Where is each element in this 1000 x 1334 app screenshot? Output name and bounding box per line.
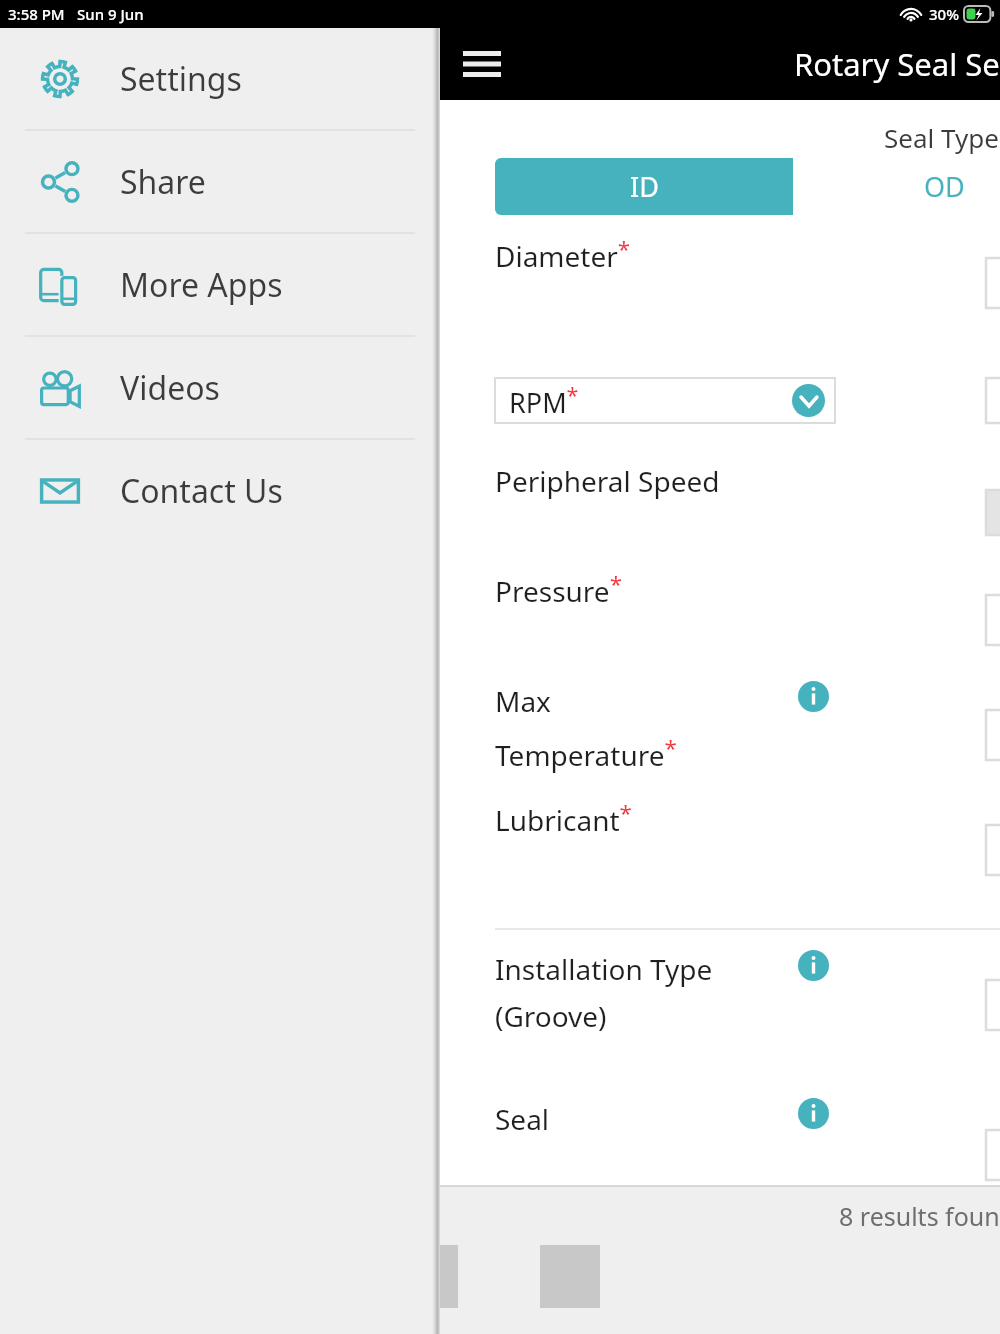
button[interactable] bbox=[986, 710, 1000, 760]
staticText: Rotary Seal Se bbox=[794, 43, 1000, 85]
button[interactable] bbox=[986, 980, 1000, 1030]
button[interactable]: More information bbox=[798, 1098, 829, 1129]
button[interactable]: More information bbox=[798, 950, 829, 981]
button[interactable]: More Apps bbox=[0, 234, 440, 335]
button[interactable]: Settings bbox=[0, 28, 440, 129]
staticText: Seal bbox=[495, 1100, 550, 1138]
button[interactable] bbox=[986, 258, 1000, 308]
staticText: 3:58 PM bbox=[8, 4, 65, 24]
button[interactable] bbox=[986, 1130, 1000, 1180]
staticText: Videos bbox=[120, 366, 220, 410]
button[interactable]: Open navigation menu bbox=[455, 37, 509, 91]
button[interactable] bbox=[986, 378, 1000, 423]
staticText: Max bbox=[495, 682, 551, 720]
button[interactable]: Videos bbox=[0, 337, 440, 438]
button[interactable]: Reset bbox=[152, 1245, 458, 1308]
button[interactable]: RPM* bbox=[495, 378, 835, 423]
button[interactable] bbox=[986, 595, 1000, 645]
staticText: Settings bbox=[120, 57, 242, 101]
button[interactable]: OD bbox=[793, 158, 1000, 215]
staticText: OD bbox=[924, 168, 965, 205]
staticText: (Groove) bbox=[495, 997, 607, 1035]
staticText: 30% bbox=[929, 4, 959, 24]
staticText: Seal Type bbox=[884, 120, 999, 155]
staticText: Temperature* bbox=[495, 732, 677, 774]
staticText: Diameter* bbox=[495, 233, 631, 275]
staticText: Pressure* bbox=[495, 568, 622, 610]
button[interactable] bbox=[986, 825, 1000, 875]
staticText: 8 results foun bbox=[839, 1199, 1000, 1233]
staticText: More Apps bbox=[120, 263, 283, 307]
staticText: Installation Type bbox=[495, 950, 713, 988]
staticText: ID bbox=[630, 168, 659, 205]
staticText: Peripheral Speed bbox=[495, 462, 720, 500]
staticText: Lubricant* bbox=[495, 797, 632, 839]
button[interactable]: More information bbox=[798, 681, 829, 712]
staticText: Share bbox=[120, 160, 206, 204]
button[interactable]: Share bbox=[0, 131, 440, 232]
button[interactable]: Contact Us bbox=[0, 440, 440, 541]
staticText: Sun 9 Jun bbox=[77, 4, 144, 24]
staticText: RPM* bbox=[509, 380, 579, 421]
button[interactable]: ID bbox=[495, 158, 793, 215]
staticText: Contact Us bbox=[120, 469, 283, 513]
